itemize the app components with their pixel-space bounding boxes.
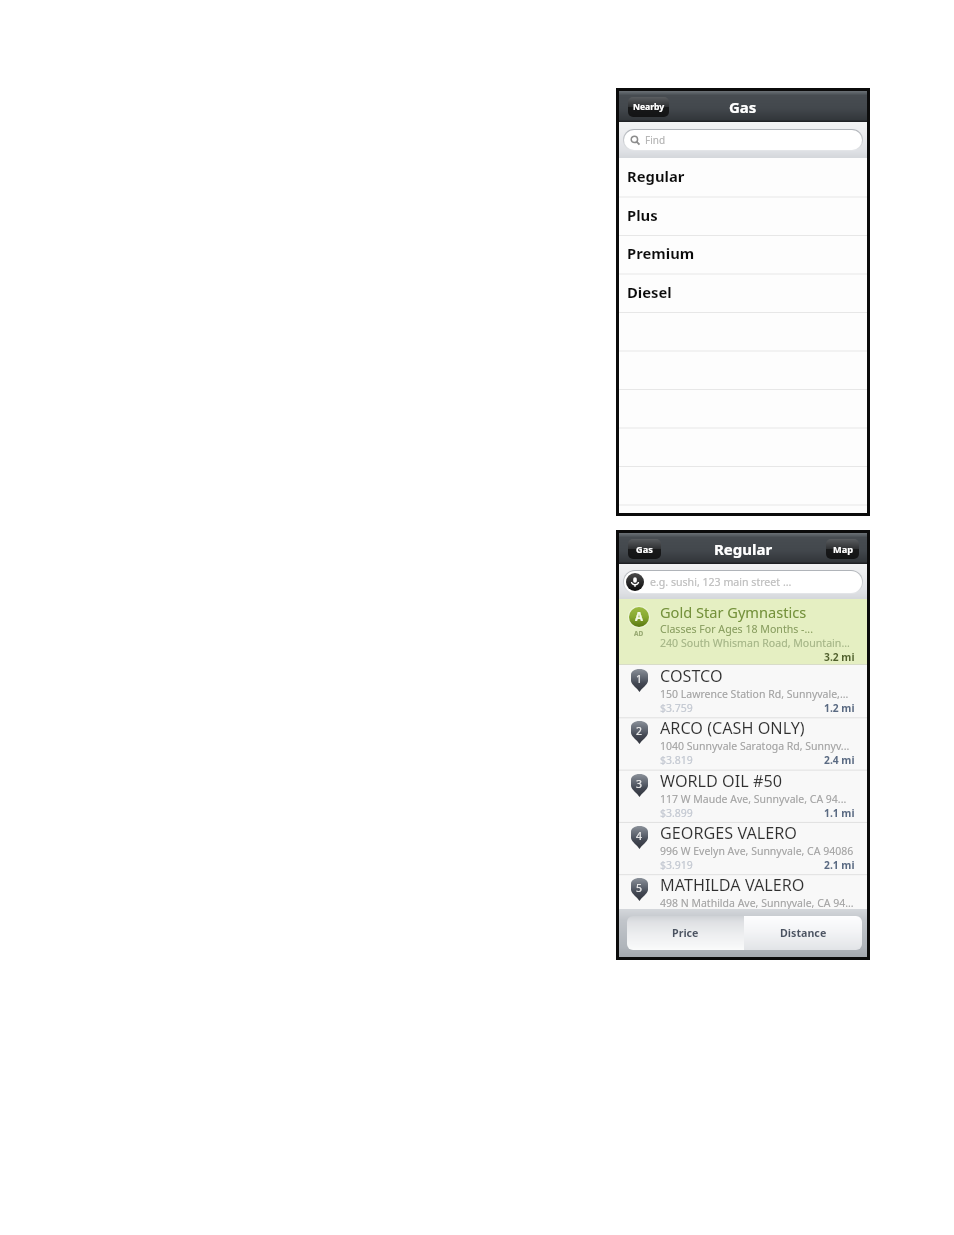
staticText: 240 South Whisman Road, Mountain... (660, 636, 850, 650)
staticText: Regular (714, 539, 773, 559)
staticText: 5 (636, 881, 643, 895)
button[interactable]: Regular (619, 158, 867, 197)
staticText: 1040 Sunnyvale Saratoga Rd, Sunnyv... (660, 739, 850, 753)
staticText: Diesel (627, 282, 672, 302)
staticText: WORLD OIL #50 (660, 770, 782, 792)
staticText: 3.2 mi (824, 650, 855, 664)
staticText: 117 W Maude Ave, Sunnyvale, CA 94... (660, 792, 847, 806)
button[interactable]: 5 (619, 874, 867, 926)
staticText: 1.1 mi (824, 806, 855, 820)
staticText: Gas (636, 543, 653, 556)
staticText: $3.819 (660, 753, 693, 767)
staticText: A (635, 609, 643, 625)
staticText: MATHILDA VALERO (660, 874, 805, 896)
staticText: e.g. sushi, 123 main street ... (650, 575, 792, 589)
staticText: 996 W Evelyn Ave, Sunnyvale, CA 94086 (660, 844, 854, 858)
staticText: Gas (729, 97, 757, 117)
button[interactable]: 3 (619, 770, 867, 822)
staticText: 1.2 mi (824, 701, 855, 715)
staticText: Distance (780, 926, 827, 941)
staticText: 150 Lawrence Station Rd, Sunnyvale,... (660, 687, 849, 701)
staticText: Map (833, 543, 853, 556)
button[interactable]: Map (826, 539, 859, 559)
staticText: ARCO (CASH ONLY) (660, 717, 805, 739)
staticText: Regular (627, 166, 685, 186)
button[interactable]: Search (624, 130, 862, 150)
staticText: 498 N Mathilda Ave, Sunnyvale, CA 94... (660, 896, 854, 910)
staticText: Plus (627, 205, 658, 225)
button[interactable]: Distance (744, 916, 862, 950)
staticText: 1 (636, 672, 643, 686)
staticText: 2.1 mi (824, 858, 855, 872)
staticText: COSTCO (660, 665, 723, 687)
staticText: Classes For Ages 18 Months -... (660, 622, 814, 636)
button[interactable]: Search (624, 571, 862, 593)
button[interactable]: Gas (628, 539, 661, 559)
staticText: 2 (636, 724, 643, 738)
staticText: $3.919 (660, 858, 693, 872)
button[interactable]: Nearby (628, 97, 669, 117)
button[interactable]: Diesel (619, 274, 867, 313)
staticText: Gold Star Gymnastics (660, 602, 807, 622)
button[interactable]: 4 (619, 822, 867, 874)
button[interactable]: 1 (619, 665, 867, 717)
button[interactable]: A (619, 599, 867, 664)
staticText: 2.4 mi (824, 753, 855, 767)
button[interactable]: Plus (619, 197, 867, 236)
staticText: Price (672, 926, 699, 941)
button[interactable]: 2 (619, 717, 867, 769)
staticText: $3.759 (660, 701, 693, 715)
staticText: 4 (636, 829, 643, 843)
staticText: $3.899 (660, 806, 693, 820)
staticText: AD (634, 629, 644, 638)
staticText: GEORGES VALERO (660, 822, 797, 844)
button[interactable]: Price (627, 916, 744, 950)
staticText: 3 (636, 777, 643, 791)
staticText: Premium (627, 243, 695, 263)
staticText: Find (645, 133, 666, 147)
staticText: Nearby (633, 101, 665, 113)
button[interactable]: Premium (619, 235, 867, 274)
